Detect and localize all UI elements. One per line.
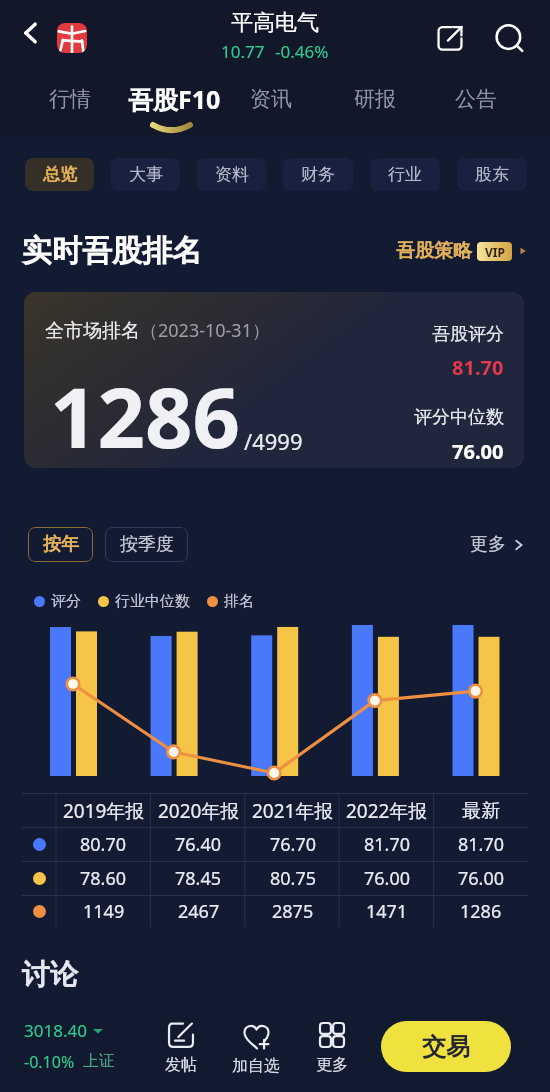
button[interactable]: Back xyxy=(10,12,52,54)
staticText: 1286 xyxy=(50,359,240,468)
staticText: /4999 xyxy=(244,426,303,456)
staticText: 80.70 xyxy=(80,832,127,857)
button[interactable]: 总览 xyxy=(25,158,94,191)
staticText: 2020年报 xyxy=(158,798,240,824)
staticText: 资料 xyxy=(215,164,249,185)
button[interactable]: 更多 xyxy=(470,533,526,556)
staticText: 1471 xyxy=(366,899,408,924)
staticText: -0.46% xyxy=(275,40,329,63)
staticText: 股东 xyxy=(475,164,509,185)
staticText: 公告 xyxy=(455,86,497,112)
button[interactable]: 资讯 xyxy=(240,82,302,116)
staticText: 评分中位数 xyxy=(414,406,504,429)
button[interactable]: 加自选 xyxy=(224,1014,288,1076)
staticText: 资讯 xyxy=(250,86,292,112)
staticText: 81.70 xyxy=(458,832,505,857)
staticText: 76.00 xyxy=(452,438,504,465)
button[interactable]: 股东 xyxy=(457,158,527,191)
staticText: -0.10% xyxy=(24,1051,75,1073)
staticText: 1149 xyxy=(83,899,125,924)
staticText: 大事 xyxy=(129,164,163,185)
staticText: 排名 xyxy=(224,592,254,611)
button[interactable]: 行业 xyxy=(370,158,440,191)
staticText: 交易 xyxy=(422,1032,470,1062)
staticText: 2467 xyxy=(178,899,220,924)
staticText: 按季度 xyxy=(120,533,174,556)
staticText: 76.00 xyxy=(458,866,505,891)
button[interactable]: Share xyxy=(428,16,471,59)
staticText: 全市场排名 xyxy=(45,319,140,343)
button[interactable]: 按年 xyxy=(28,527,93,562)
staticText: 76.00 xyxy=(364,866,411,891)
staticText: 更多 xyxy=(316,1055,348,1075)
staticText: 2022年报 xyxy=(346,798,428,824)
staticText: 评分 xyxy=(51,592,81,611)
button[interactable]: 吾股策略 xyxy=(396,239,528,263)
staticText: （2023-10-31） xyxy=(140,318,270,343)
staticText: 讨论 xyxy=(22,957,78,992)
staticText: 最新 xyxy=(462,799,500,823)
staticText: 发帖 xyxy=(165,1055,197,1075)
staticText: 2019年报 xyxy=(63,798,145,824)
staticText: 总览 xyxy=(43,164,77,185)
staticText: 行情 xyxy=(49,86,91,112)
staticText: 财务 xyxy=(301,164,335,185)
button[interactable]: Search xyxy=(487,16,530,59)
staticText: 吾股F10 xyxy=(128,82,221,116)
staticText: 76.40 xyxy=(175,832,222,857)
staticText: 研报 xyxy=(354,86,396,112)
button[interactable]: 公告 xyxy=(445,82,507,116)
button[interactable]: 吾股F10 xyxy=(118,78,231,120)
button[interactable]: 研报 xyxy=(344,82,406,116)
staticText: VIP xyxy=(485,244,505,260)
staticText: 81.70 xyxy=(364,832,411,857)
button[interactable]: 交易 xyxy=(381,1021,511,1072)
staticText: 吾股评分 xyxy=(432,323,504,346)
button[interactable]: 更多 xyxy=(300,1014,364,1075)
button[interactable]: 发帖 xyxy=(149,1014,213,1075)
staticText: 更多 xyxy=(470,533,506,556)
staticText: 76.70 xyxy=(270,832,317,857)
staticText: 按年 xyxy=(43,533,79,556)
staticText: 实时吾股排名 xyxy=(22,232,202,270)
button[interactable]: 3018.40 xyxy=(24,1019,115,1073)
staticText: 80.75 xyxy=(270,866,317,891)
staticText: 2021年报 xyxy=(252,798,334,824)
staticText: 78.60 xyxy=(80,866,127,891)
staticText: 行业 xyxy=(388,164,422,185)
button[interactable]: 大事 xyxy=(111,158,180,191)
staticText: 78.45 xyxy=(175,866,222,891)
staticText: 81.70 xyxy=(452,354,504,381)
button[interactable]: 行情 xyxy=(39,82,101,116)
staticText: 2875 xyxy=(272,899,314,924)
staticText: 加自选 xyxy=(232,1056,280,1076)
staticText: 吾股策略 xyxy=(396,239,472,263)
staticText: 10.77 xyxy=(221,40,265,63)
button[interactable]: 资料 xyxy=(197,158,266,191)
staticText: 行业中位数 xyxy=(115,592,190,611)
staticText: 上证 xyxy=(83,1051,115,1071)
button[interactable]: 按季度 xyxy=(105,527,188,562)
staticText: 3018.40 xyxy=(24,1019,87,1042)
staticText: 1286 xyxy=(460,899,502,924)
button[interactable]: 财务 xyxy=(283,158,353,191)
staticText: 平高电气 xyxy=(231,9,319,37)
